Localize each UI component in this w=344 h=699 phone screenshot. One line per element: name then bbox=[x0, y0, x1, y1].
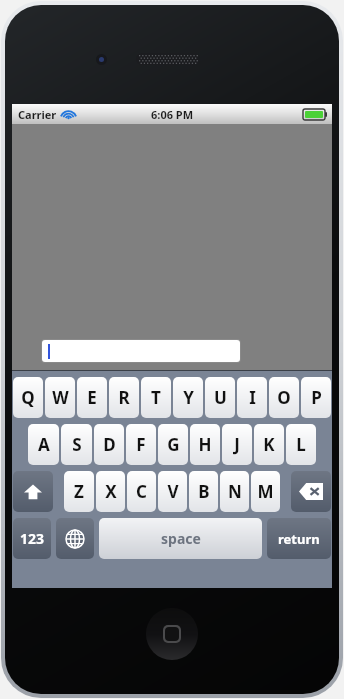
staticText: O bbox=[277, 386, 291, 409]
button[interactable]: N bbox=[220, 471, 249, 512]
button[interactable]: Q bbox=[13, 377, 43, 418]
staticText: return bbox=[278, 530, 320, 548]
staticText: R bbox=[118, 386, 130, 409]
button[interactable]: return bbox=[267, 518, 331, 559]
button[interactable]: F bbox=[126, 424, 156, 465]
staticText: S bbox=[72, 433, 82, 456]
button[interactable]: Z bbox=[64, 471, 94, 512]
button[interactable]: E bbox=[77, 377, 107, 418]
staticText: W bbox=[52, 386, 69, 409]
staticText: 123 bbox=[20, 529, 45, 548]
staticText: space bbox=[161, 529, 201, 548]
button[interactable]: C bbox=[127, 471, 156, 512]
staticText: H bbox=[198, 433, 212, 456]
button[interactable]: X bbox=[96, 471, 125, 512]
staticText: 6:06 PM bbox=[151, 107, 194, 122]
button[interactable]: Delete bbox=[291, 471, 331, 512]
button[interactable]: Home bbox=[146, 608, 198, 660]
button[interactable]: W bbox=[45, 377, 75, 418]
staticText: E bbox=[87, 386, 97, 409]
staticText: X bbox=[105, 480, 117, 503]
button[interactable]: K bbox=[254, 424, 284, 465]
button[interactable]: Shift bbox=[13, 471, 53, 512]
staticText: K bbox=[263, 433, 275, 456]
button[interactable]: P bbox=[301, 377, 331, 418]
staticText: T bbox=[151, 386, 161, 409]
staticText: V bbox=[167, 480, 179, 503]
button[interactable]: I bbox=[237, 377, 267, 418]
staticText: Carrier bbox=[18, 107, 57, 122]
button[interactable]: O bbox=[269, 377, 299, 418]
button[interactable]: D bbox=[94, 424, 124, 465]
button[interactable]: U bbox=[205, 377, 235, 418]
button[interactable]: S bbox=[61, 424, 92, 465]
button[interactable]: Y bbox=[173, 377, 203, 418]
button[interactable]: H bbox=[190, 424, 220, 465]
staticText: Z bbox=[74, 480, 84, 503]
button[interactable]: Switch keyboard bbox=[56, 518, 94, 559]
staticText: U bbox=[214, 386, 227, 409]
button[interactable]: G bbox=[158, 424, 188, 465]
button[interactable]: J bbox=[222, 424, 252, 465]
button[interactable]: B bbox=[189, 471, 218, 512]
staticText: J bbox=[234, 433, 240, 456]
staticText: M bbox=[257, 480, 274, 503]
button[interactable]: V bbox=[158, 471, 187, 512]
button[interactable] bbox=[42, 340, 240, 362]
staticText: G bbox=[167, 433, 180, 456]
staticText: A bbox=[38, 433, 50, 456]
staticText: L bbox=[296, 433, 306, 456]
button[interactable]: R bbox=[109, 377, 139, 418]
staticText: Q bbox=[21, 386, 35, 409]
button[interactable]: 123 bbox=[13, 518, 51, 559]
staticText: Y bbox=[183, 386, 194, 409]
button[interactable]: space bbox=[99, 518, 262, 559]
staticText: I bbox=[249, 386, 256, 409]
button[interactable]: L bbox=[286, 424, 316, 465]
button[interactable]: A bbox=[28, 424, 59, 465]
button[interactable]: M bbox=[251, 471, 280, 512]
button[interactable]: T bbox=[141, 377, 171, 418]
staticText: D bbox=[103, 433, 116, 456]
staticText: N bbox=[228, 480, 242, 503]
staticText: B bbox=[198, 480, 210, 503]
staticText: C bbox=[136, 480, 147, 503]
staticText: P bbox=[311, 386, 322, 409]
staticText: F bbox=[136, 433, 146, 456]
